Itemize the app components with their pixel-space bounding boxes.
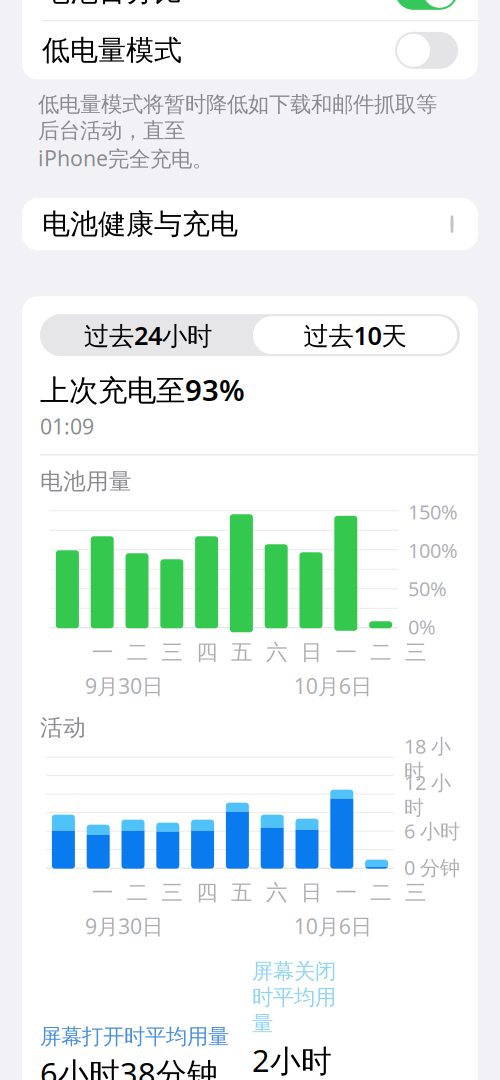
- staticText: 100%: [408, 537, 458, 563]
- staticText: 日: [301, 639, 322, 665]
- staticText: 电池百分比: [42, 0, 182, 8]
- staticText: 0%: [408, 613, 436, 640]
- staticText: 一: [335, 639, 356, 665]
- staticText: 三: [405, 639, 426, 665]
- staticText: 六: [266, 880, 287, 906]
- staticText: 低电量模式将暂时降低如下载和邮件抓取等后台活动，直至 iPhone完全充电。: [38, 91, 437, 172]
- staticText: 低电量模式: [42, 33, 182, 67]
- button[interactable]: 过去24小时: [43, 314, 253, 356]
- button[interactable]: 低电量模式: [22, 21, 478, 79]
- staticText: 10月6日: [294, 912, 372, 940]
- staticText: 6小时38分钟: [40, 1053, 218, 1080]
- staticText: 电池用量: [40, 467, 132, 495]
- staticText: 五: [231, 880, 252, 906]
- staticText: 一: [92, 639, 113, 665]
- staticText: 活动: [40, 714, 86, 742]
- staticText: 二: [370, 639, 391, 665]
- staticText: 二: [127, 880, 148, 906]
- staticText: 一: [92, 880, 113, 906]
- staticText: 屏幕打开时平均用量: [40, 1024, 229, 1050]
- staticText: 12 小时: [404, 769, 451, 820]
- staticText: 0 分钟: [404, 854, 460, 880]
- staticText: 三: [405, 880, 426, 906]
- staticText: 01:09: [40, 412, 94, 440]
- staticText: 6 小时: [404, 817, 460, 844]
- staticText: 一: [335, 880, 356, 906]
- staticText: 四: [196, 639, 217, 665]
- staticText: 二: [127, 639, 148, 665]
- staticText: 2小时15分钟: [252, 1040, 332, 1080]
- button[interactable]: 电池百分比: [22, 0, 478, 20]
- staticText: 9月30日: [85, 912, 163, 940]
- staticText: 18 小时: [404, 733, 451, 784]
- staticText: 电池健康与充电: [42, 207, 238, 241]
- staticText: 过去24小时: [84, 318, 212, 352]
- staticText: 三: [161, 880, 182, 906]
- staticText: 四: [196, 880, 217, 906]
- staticText: 150%: [408, 498, 458, 525]
- staticText: 50%: [408, 575, 447, 602]
- staticText: 五: [231, 639, 252, 665]
- staticText: 9月30日: [85, 671, 163, 700]
- staticText: 三: [161, 639, 182, 665]
- staticText: 10月6日: [294, 671, 372, 700]
- staticText: 六: [266, 639, 287, 665]
- button[interactable]: 电池健康与充电: [22, 198, 478, 250]
- staticText: 上次充电至93%: [40, 370, 245, 409]
- staticText: 二: [370, 880, 391, 906]
- staticText: 过去10天: [303, 318, 406, 352]
- staticText: 屏幕关闭时平均用量: [252, 958, 336, 1037]
- staticText: 日: [301, 880, 322, 906]
- button[interactable]: 过去10天: [253, 316, 457, 354]
